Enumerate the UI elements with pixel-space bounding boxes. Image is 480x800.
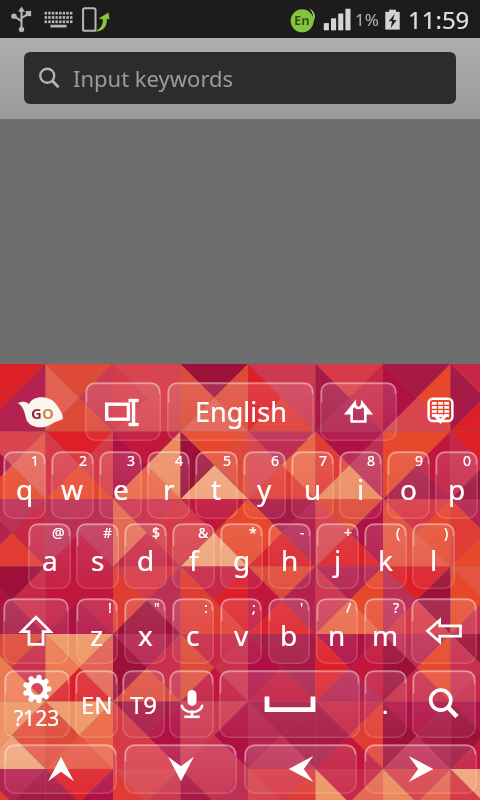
staticText: Input keywords: [73, 63, 234, 93]
button[interactable]: c: [172, 598, 214, 664]
button[interactable]: [169, 670, 214, 738]
staticText: q: [16, 470, 34, 508]
staticText: d: [137, 541, 155, 579]
button[interactable]: b: [268, 598, 310, 664]
staticText: 7: [319, 451, 328, 470]
staticText: k: [378, 541, 393, 579]
staticText: *: [249, 523, 257, 542]
button[interactable]: r: [147, 451, 190, 519]
staticText: f: [189, 541, 199, 579]
button[interactable]: o: [387, 451, 430, 519]
button[interactable]: u: [291, 451, 334, 519]
staticText: v: [234, 616, 249, 654]
button[interactable]: [411, 598, 477, 664]
staticText: y: [257, 470, 272, 508]
staticText: 1: [31, 451, 40, 470]
button[interactable]: Hide keyboard: [417, 388, 463, 434]
staticText: h: [281, 541, 299, 579]
staticText: ': [300, 598, 304, 617]
staticText: g: [233, 541, 251, 579]
button[interactable]: s: [76, 523, 119, 589]
staticText: #: [103, 523, 113, 542]
staticText: (: [396, 523, 401, 542]
button[interactable]: EN: [75, 670, 118, 738]
staticText: EN: [81, 688, 113, 721]
button[interactable]: [85, 382, 161, 441]
staticText: !: [108, 598, 112, 617]
staticText: 3: [127, 451, 136, 470]
button[interactable]: [3, 598, 69, 664]
button[interactable]: [4, 744, 117, 794]
staticText: &: [198, 523, 209, 542]
button[interactable]: [124, 744, 237, 794]
staticText: a: [42, 541, 58, 579]
staticText: 11:59: [408, 3, 470, 36]
staticText: 4: [175, 451, 184, 470]
button[interactable]: p: [435, 451, 478, 519]
staticText: 9: [415, 451, 424, 470]
staticText: z: [90, 616, 104, 654]
button[interactable]: x: [124, 598, 166, 664]
staticText: 5: [223, 451, 232, 470]
button[interactable]: t: [195, 451, 238, 519]
button[interactable]: l: [412, 523, 455, 589]
staticText: $: [152, 523, 161, 542]
other: Keyboard layout: [85, 382, 161, 441]
other: Space: [219, 670, 360, 738]
staticText: En: [294, 11, 310, 29]
button[interactable]: h: [268, 523, 311, 589]
button[interactable]: [219, 670, 360, 738]
staticText: o: [400, 470, 417, 508]
button[interactable]: .: [364, 670, 407, 738]
button[interactable]: j: [316, 523, 359, 589]
staticText: p: [448, 470, 466, 508]
staticText: ?: [393, 598, 400, 617]
button[interactable]: d: [124, 523, 167, 589]
staticText: @: [52, 523, 65, 542]
button[interactable]: [244, 744, 357, 794]
staticText: u: [304, 470, 322, 508]
button[interactable]: [320, 382, 397, 441]
button[interactable]: a: [28, 523, 71, 589]
button[interactable]: w: [51, 451, 94, 519]
staticText: x: [138, 616, 153, 654]
button[interactable]: ?123: [4, 670, 70, 738]
staticText: j: [334, 541, 342, 579]
button[interactable]: e: [99, 451, 142, 519]
button[interactable]: English: [167, 382, 314, 441]
button[interactable]: q: [3, 451, 46, 519]
button[interactable]: Input keywords: [24, 52, 456, 104]
staticText: ): [444, 523, 449, 542]
staticText: O: [42, 403, 54, 423]
staticText: /: [346, 598, 352, 617]
button[interactable]: [364, 744, 477, 794]
staticText: t: [211, 470, 222, 508]
staticText: :: [204, 598, 208, 617]
button[interactable]: i: [339, 451, 382, 519]
button[interactable]: GO Keyboard: [17, 396, 63, 428]
other: Right: [364, 744, 477, 794]
button[interactable]: g: [220, 523, 263, 589]
other: Voice input: [169, 670, 214, 738]
staticText: G: [31, 403, 42, 423]
other: Up: [4, 744, 117, 794]
button[interactable]: m: [364, 598, 406, 664]
button[interactable]: f: [172, 523, 215, 589]
button[interactable]: T9: [122, 670, 165, 738]
staticText: b: [280, 616, 298, 654]
other: Theme: [320, 382, 397, 441]
staticText: +: [344, 523, 353, 542]
button[interactable]: n: [316, 598, 358, 664]
staticText: ;: [252, 598, 256, 617]
other: Left: [244, 744, 357, 794]
staticText: m: [372, 616, 399, 654]
button[interactable]: [412, 670, 476, 738]
button[interactable]: z: [76, 598, 118, 664]
button[interactable]: k: [364, 523, 407, 589]
staticText: English: [195, 393, 287, 430]
staticText: e: [113, 470, 129, 508]
button[interactable]: v: [220, 598, 262, 664]
staticText: 0: [463, 451, 472, 470]
staticText: r: [163, 470, 175, 508]
button[interactable]: y: [243, 451, 286, 519]
